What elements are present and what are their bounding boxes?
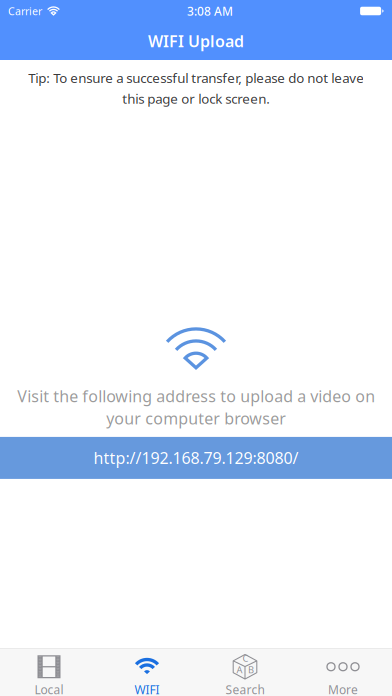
staticText: WIFI Upload <box>148 30 244 52</box>
staticText: Carrier <box>8 4 42 18</box>
button[interactable]: C <box>196 649 294 696</box>
staticText: Local <box>34 682 63 696</box>
staticText: C <box>242 652 248 664</box>
staticText: WIFI <box>134 682 159 696</box>
staticText: Search <box>225 682 264 696</box>
staticText: Tip: To ensure a successful transfer, pl… <box>28 69 364 107</box>
staticText: More <box>328 682 358 696</box>
staticText: A <box>236 664 242 676</box>
button[interactable]: WIFI <box>98 649 196 696</box>
staticText: B <box>248 664 254 676</box>
button[interactable]: More <box>294 649 392 696</box>
staticText: http://192.168.79.129:8080/ <box>93 447 298 468</box>
staticText: 3:08 AM <box>187 3 233 19</box>
button[interactable]: Local <box>0 649 98 696</box>
staticText: Visit the following address to upload a … <box>17 385 375 429</box>
